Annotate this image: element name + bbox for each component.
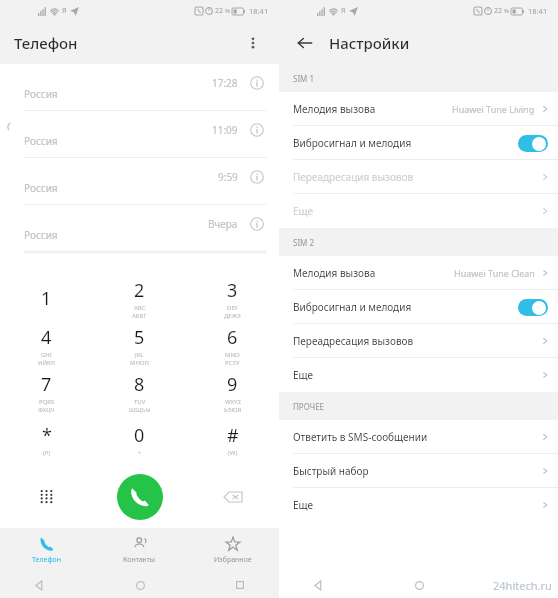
staticText: 1 [41, 286, 52, 311]
button[interactable]: Россия [0, 205, 279, 252]
button[interactable]: Back [28, 574, 50, 596]
button[interactable]: Мелодия вызова [279, 256, 558, 290]
staticText: (P) [43, 449, 51, 457]
staticText: Избранное [214, 555, 252, 565]
button[interactable]: Hide keypad [0, 465, 93, 528]
staticText: 9:59 [218, 170, 238, 184]
staticText: Телефон [32, 555, 62, 565]
staticText: (W) [228, 449, 238, 457]
staticText: * [42, 423, 52, 448]
button[interactable]: 5 [93, 322, 186, 369]
button[interactable]: * [0, 416, 93, 463]
staticText: ШЩЪЫ [129, 406, 151, 414]
button[interactable]: Еще [279, 194, 558, 228]
button[interactable]: Россия [0, 158, 279, 205]
staticText: РСТУ [225, 359, 240, 367]
button[interactable]: Россия [0, 64, 279, 111]
staticText: 6 [227, 325, 238, 350]
button[interactable]: Еще [279, 358, 558, 392]
button[interactable]: 3 [186, 275, 279, 322]
button[interactable]: Recents [508, 574, 530, 596]
staticText: Еще [293, 368, 314, 382]
staticText: 2 [134, 278, 145, 303]
button[interactable]: Home [129, 574, 151, 596]
staticText: 24hitech.ru [493, 578, 552, 593]
staticText: 18:41 [249, 6, 269, 16]
staticText: 0 [134, 423, 145, 448]
staticText: ABC [134, 304, 146, 312]
button[interactable]: Call details [247, 167, 267, 187]
button[interactable]: Call details [247, 214, 267, 234]
staticText: 22 [494, 6, 503, 16]
button[interactable]: Вибросигнал и мелодия [279, 290, 558, 324]
staticText: WXYZ [225, 398, 241, 406]
staticText: MNO [225, 351, 240, 359]
staticText: 4 [41, 325, 52, 350]
staticText: Ответить в SMS-сообщении [293, 430, 428, 444]
button[interactable]: Телефон [0, 528, 93, 572]
staticText: МНОП [130, 359, 149, 367]
button[interactable]: 0 [93, 416, 186, 463]
button[interactable]: Ответить в SMS-сообщении [279, 420, 558, 454]
staticText: АБВГ [132, 312, 147, 320]
button[interactable]: Россия [0, 111, 279, 158]
button[interactable]: Backspace [186, 465, 279, 528]
button[interactable]: Быстрый набор [279, 454, 558, 488]
staticText: Вчера [208, 217, 238, 231]
staticText: Мелодия вызова [293, 266, 376, 280]
button[interactable]: Мелодия вызова [279, 92, 558, 126]
button[interactable]: Вибросигнал и мелодия [279, 126, 558, 160]
button[interactable]: Back [307, 574, 329, 596]
staticText: Быстрый набор [293, 464, 369, 478]
staticText: + [138, 449, 142, 457]
staticText: JKL [135, 351, 144, 359]
button[interactable]: # [186, 416, 279, 463]
staticText: Я [62, 6, 67, 16]
button[interactable]: Контакты [93, 528, 186, 572]
staticText: Контакты [123, 555, 156, 565]
button[interactable]: 6 [186, 322, 279, 369]
button[interactable]: More options [237, 27, 269, 59]
button[interactable]: Еще [279, 488, 558, 522]
staticText: Телефон [14, 33, 78, 53]
staticText: GHI [41, 351, 52, 359]
staticText: SIM 1 [293, 73, 315, 84]
staticText: Россия [24, 228, 58, 242]
button[interactable]: 2 [93, 275, 186, 322]
staticText: SIM 2 [293, 237, 315, 248]
button[interactable]: Переадресация вызовов [279, 160, 558, 194]
button[interactable]: Recents [229, 574, 251, 596]
staticText: % [504, 7, 509, 15]
staticText: Переадресация вызовов [293, 334, 414, 348]
button[interactable]: Back [291, 29, 319, 57]
staticText: PQRS [39, 398, 55, 406]
button[interactable]: 4 [0, 322, 93, 369]
button[interactable]: 9 [186, 369, 279, 416]
button[interactable]: 1 [0, 275, 93, 322]
staticText: ЬЭЮЯ [224, 406, 242, 414]
button[interactable]: 7 [0, 369, 93, 416]
button[interactable]: Home [408, 574, 430, 596]
staticText: ИЙКЛ [38, 359, 56, 367]
staticText: Я [341, 6, 346, 16]
staticText: Переадресация вызовов [293, 170, 414, 184]
button[interactable]: Call details [247, 120, 267, 140]
staticText: 11:09 [212, 123, 238, 137]
button[interactable]: Call [93, 465, 186, 528]
staticText: 22 [215, 6, 224, 16]
staticText: 5 [134, 325, 145, 350]
button[interactable]: Call details [247, 73, 267, 93]
staticText: % [225, 7, 230, 15]
staticText: DEF [227, 304, 238, 312]
staticText: # [227, 423, 239, 448]
staticText: 3 [227, 278, 238, 303]
staticText: Еще [293, 204, 314, 218]
button[interactable]: 8 [93, 369, 186, 416]
button[interactable]: Избранное [186, 528, 279, 572]
staticText: 18:41 [528, 6, 548, 16]
button[interactable]: Переадресация вызовов [279, 324, 558, 358]
staticText: 17:28 [212, 76, 238, 90]
staticText: Huawei Tune Living [452, 103, 535, 115]
staticText: 9 [227, 372, 238, 397]
staticText: ПРОЧЕЕ [293, 401, 325, 412]
